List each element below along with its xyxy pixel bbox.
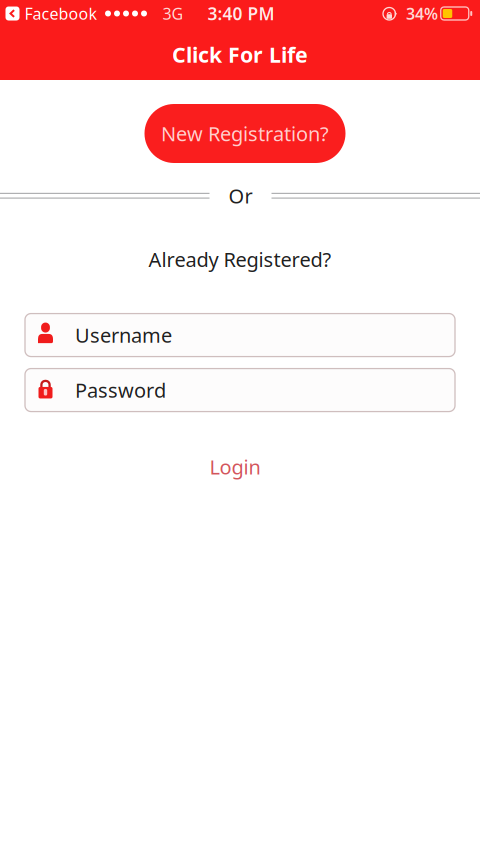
staticText: 34%: [406, 3, 438, 24]
staticText: 3G: [162, 3, 183, 24]
button[interactable]: Username: [25, 314, 455, 357]
staticText: Login: [209, 454, 260, 480]
staticText: Already Registered?: [148, 246, 331, 273]
staticText: Or: [228, 182, 252, 209]
staticText: Facebook: [24, 3, 97, 24]
staticText: Click For Life: [172, 40, 308, 69]
staticText: 3:40 PM: [207, 2, 274, 25]
staticText: Username: [75, 322, 172, 348]
staticText: Password: [75, 377, 166, 403]
staticText: New Registration?: [161, 120, 329, 147]
button[interactable]: Facebook: [3, 2, 99, 24]
button[interactable]: New Registration?: [144, 104, 345, 163]
button[interactable]: Login: [187, 448, 282, 486]
button[interactable]: Password: [25, 369, 455, 412]
